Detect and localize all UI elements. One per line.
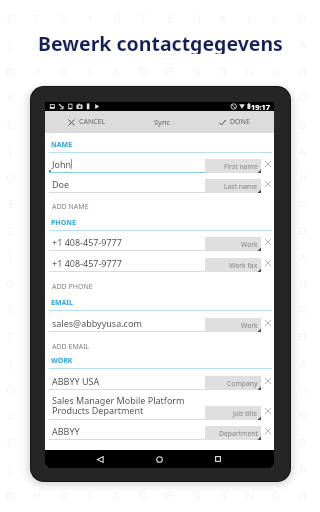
staticText: O <box>218 171 227 185</box>
staticText: O <box>112 250 121 264</box>
button[interactable]: Remove field <box>262 236 274 248</box>
staticText: A <box>219 250 226 264</box>
button[interactable]: DONE <box>188 111 274 133</box>
button[interactable]: Sync <box>137 111 188 133</box>
button[interactable]: Remove field <box>262 425 274 437</box>
staticText: A <box>219 38 226 52</box>
staticText: L <box>194 250 200 264</box>
staticText: Sales Manager Mobile Platform Products D… <box>52 394 185 417</box>
button[interactable]: Remove field <box>262 375 274 387</box>
staticText: O <box>112 462 121 476</box>
staticText: L <box>61 303 67 317</box>
button[interactable]: Job title <box>205 406 261 420</box>
staticText: Work <box>241 240 258 249</box>
staticText: B <box>246 250 253 264</box>
staticText: B <box>60 224 67 238</box>
staticText: O <box>85 91 94 105</box>
staticText: A <box>219 303 226 317</box>
staticText: Y <box>87 330 93 344</box>
staticText: B <box>86 144 93 158</box>
button[interactable]: Remove field <box>262 405 274 417</box>
staticText: H <box>139 144 147 158</box>
staticText: M <box>59 356 69 370</box>
button[interactable]: Sales Manager Mobile Platform Products D… <box>45 390 274 420</box>
button[interactable]: Company <box>205 376 261 390</box>
button[interactable]: ABBYY <box>45 419 274 440</box>
staticText: B <box>86 462 93 476</box>
button[interactable]: First name <box>205 159 261 173</box>
staticText: B <box>246 38 253 52</box>
button[interactable]: Work <box>205 237 261 251</box>
staticText: A <box>219 144 226 158</box>
staticText: L <box>247 436 253 450</box>
staticText: EMAIL <box>51 298 74 308</box>
staticText: B <box>60 436 67 450</box>
staticText: L <box>273 118 279 132</box>
button[interactable]: Remove field <box>262 178 274 190</box>
button[interactable]: +1 408-457-9777 <box>45 251 274 272</box>
staticText: O <box>165 462 174 476</box>
staticText: H <box>139 356 147 370</box>
staticText: J <box>195 303 198 317</box>
staticText: O <box>298 12 307 26</box>
button[interactable]: Work fax <box>205 258 261 272</box>
staticText: Й <box>113 436 121 450</box>
staticText: A <box>219 118 226 132</box>
button[interactable]: Last name <box>205 179 261 193</box>
staticText: C <box>7 12 14 26</box>
staticText: O <box>165 356 174 370</box>
button[interactable]: ADD NAME <box>45 192 274 211</box>
staticText: H <box>299 65 307 79</box>
staticText: O <box>298 118 307 132</box>
staticText: 요 <box>164 303 175 316</box>
staticText: O <box>59 489 68 503</box>
button[interactable]: Remove field <box>262 158 274 170</box>
staticText: G <box>272 277 280 291</box>
staticText: N <box>246 65 254 79</box>
staticText: E <box>167 12 173 26</box>
button[interactable]: Doe <box>45 173 274 193</box>
staticText: A <box>219 12 226 26</box>
staticText: 好 <box>164 489 175 502</box>
button[interactable]: CANCEL <box>45 111 137 133</box>
staticText: B <box>193 171 200 185</box>
button[interactable]: Work <box>205 318 261 332</box>
staticText: A <box>299 38 306 52</box>
staticText: T <box>34 12 40 26</box>
button[interactable]: Remove field <box>262 317 274 329</box>
staticText: B <box>86 356 93 370</box>
staticText: 하 <box>297 409 308 422</box>
staticText: L <box>87 65 93 79</box>
button[interactable]: sales@abbyyusa.com <box>45 311 274 332</box>
staticText: 你 <box>137 383 148 396</box>
staticText: A <box>219 436 226 450</box>
button[interactable]: ADD EMAIL <box>45 332 274 351</box>
button[interactable]: Home <box>150 450 168 468</box>
staticText: J <box>9 144 12 158</box>
button[interactable]: Back <box>91 450 109 468</box>
staticText: 하 <box>111 91 122 104</box>
staticText: A <box>299 462 306 476</box>
button[interactable]: ADD PHONE <box>45 272 274 292</box>
button[interactable]: John <box>45 153 274 173</box>
button[interactable]: +1 408-457-9777 <box>45 231 274 251</box>
button[interactable]: ABBYY USA <box>45 369 274 390</box>
staticText: L <box>61 91 67 105</box>
staticText: J <box>9 250 12 264</box>
staticText: O <box>6 489 15 503</box>
staticText: +1 408-457-9777 <box>52 257 122 269</box>
staticText: A <box>219 224 226 238</box>
staticText: M <box>245 303 255 317</box>
button[interactable]: Recent apps <box>209 450 227 468</box>
staticText: 요 <box>164 409 175 422</box>
button[interactable]: Department <box>205 426 261 440</box>
staticText: 19:17 <box>251 102 270 111</box>
button[interactable]: Remove field <box>262 257 274 269</box>
